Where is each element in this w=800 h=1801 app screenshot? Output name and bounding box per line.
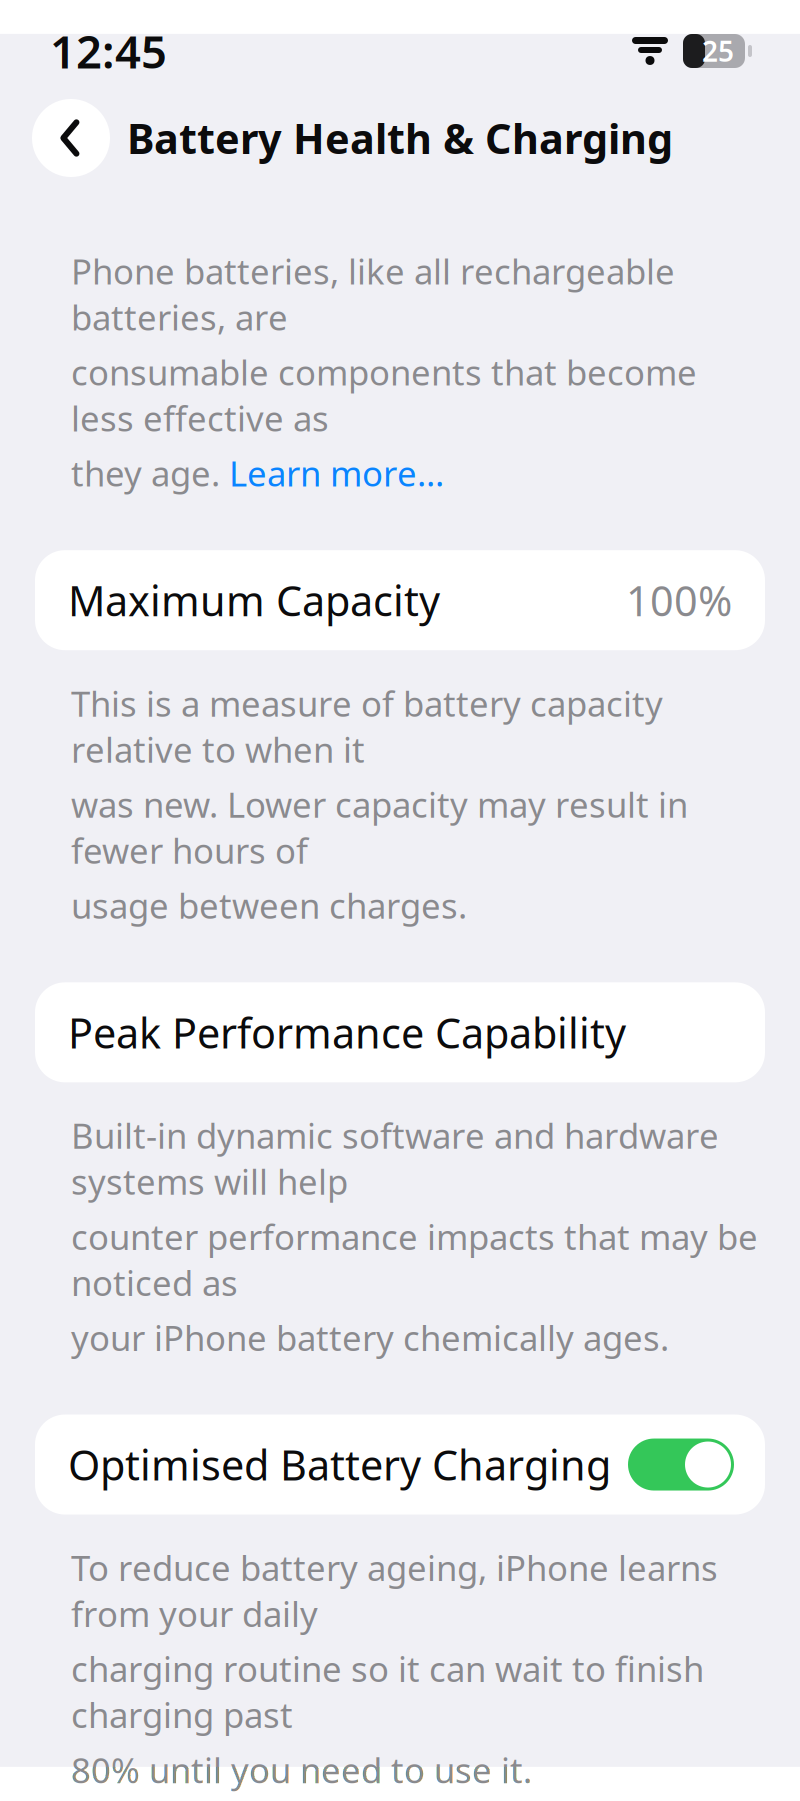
staticText: they age.: [71, 450, 229, 496]
staticText: Battery Health & Charging: [127, 111, 673, 165]
staticText: charging routine so it can wait to finis…: [71, 1646, 704, 1738]
staticText: Maximum Capacity: [68, 573, 440, 628]
staticText: usage between charges.: [71, 882, 467, 928]
staticText: Learn more...: [229, 450, 444, 496]
staticText: Optimised Battery Charging: [68, 1437, 611, 1492]
staticText: 100%: [626, 573, 732, 628]
button[interactable]: Back: [32, 99, 110, 177]
staticText: your iPhone battery chemically ages.: [71, 1314, 669, 1360]
staticText: Built-in dynamic software and hardware s…: [71, 1112, 719, 1204]
staticText: was new. Lower capacity may result in fe…: [71, 781, 688, 873]
button[interactable]: Peak Performance Capability: [35, 982, 765, 1082]
staticText: Phone batteries, like all rechargeable b…: [71, 248, 675, 340]
staticText: 25: [702, 32, 734, 70]
button[interactable]: Maximum Capacity: [35, 550, 765, 650]
button[interactable]: Learn more...: [229, 450, 444, 496]
staticText: consumable components that become less e…: [71, 349, 697, 441]
staticText: Peak Performance Capability: [68, 1005, 626, 1060]
staticText: counter performance impacts that may be …: [71, 1213, 758, 1305]
staticText: 12:45: [50, 21, 167, 81]
staticText: To reduce battery ageing, iPhone learns …: [71, 1544, 718, 1637]
staticText: 80% until you need to use it.: [71, 1747, 532, 1793]
staticText: This is a measure of battery capacity re…: [71, 680, 663, 772]
button[interactable]: Optimised Battery Charging: [35, 1414, 765, 1514]
